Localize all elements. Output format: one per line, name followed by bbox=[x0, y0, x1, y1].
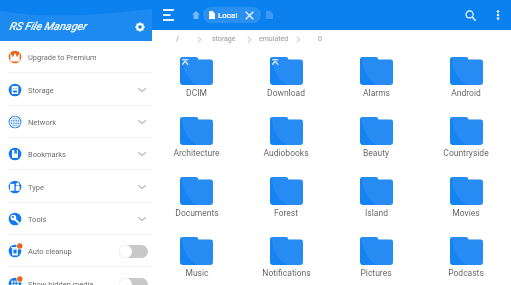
button[interactable]: Alarms bbox=[331, 48, 421, 108]
staticText: Local bbox=[218, 11, 238, 20]
staticText: Audiobooks bbox=[263, 148, 309, 158]
button[interactable]: Network bbox=[0, 106, 152, 138]
button[interactable]: Movies bbox=[421, 168, 511, 228]
staticText: Show hidden media bbox=[28, 280, 94, 285]
staticText: Movies bbox=[452, 208, 480, 218]
button[interactable]: Close tab bbox=[245, 11, 254, 20]
staticText: Podcasts bbox=[448, 268, 484, 278]
button[interactable]: Audiobooks bbox=[241, 108, 331, 168]
button[interactable]: Documents bbox=[152, 168, 241, 228]
staticText: RS File Manager bbox=[9, 20, 87, 33]
staticText: Bookmarks bbox=[28, 150, 66, 159]
button[interactable]: DCIM bbox=[152, 48, 241, 108]
staticText: Upgrade to Premium bbox=[28, 53, 97, 62]
staticText: Documents bbox=[175, 208, 219, 218]
staticText: Network bbox=[28, 118, 57, 127]
staticText: Notifications bbox=[262, 268, 311, 278]
button[interactable]: Notifications bbox=[241, 228, 331, 285]
button[interactable]: New tab bbox=[263, 9, 275, 21]
staticText: Countryside bbox=[443, 148, 489, 158]
button[interactable]: storage bbox=[212, 35, 236, 43]
button[interactable]: Download bbox=[241, 48, 331, 108]
staticText: Music bbox=[185, 268, 209, 278]
staticText: Alarms bbox=[363, 88, 390, 98]
staticText: Forest bbox=[274, 208, 298, 218]
button[interactable]: Countryside bbox=[421, 108, 511, 168]
button[interactable]: / bbox=[176, 35, 179, 43]
staticText: Type bbox=[28, 183, 44, 192]
button[interactable]: Type bbox=[0, 171, 152, 203]
button[interactable]: Beauty bbox=[331, 108, 421, 168]
button[interactable]: Forest bbox=[241, 168, 331, 228]
button[interactable]: Music bbox=[152, 228, 241, 285]
staticText: Island bbox=[365, 208, 388, 218]
button[interactable]: Auto cleanup bbox=[0, 235, 152, 267]
button[interactable]: Architecture bbox=[152, 108, 241, 168]
staticText: / bbox=[176, 35, 179, 43]
button[interactable]: Menu bbox=[157, 4, 179, 26]
button[interactable]: Local bbox=[203, 7, 261, 23]
staticText: Architecture bbox=[173, 148, 220, 158]
staticText: Android bbox=[451, 88, 481, 98]
staticText: Download bbox=[267, 88, 305, 98]
button[interactable]: Android bbox=[421, 48, 511, 108]
button[interactable]: Storage bbox=[0, 74, 152, 106]
button[interactable]: emulated bbox=[259, 35, 289, 43]
button[interactable]: Island bbox=[331, 168, 421, 228]
button[interactable]: Upgrade to Premium bbox=[0, 41, 152, 73]
button[interactable]: Tools bbox=[0, 203, 152, 235]
button[interactable]: 0 bbox=[318, 35, 322, 43]
staticText: storage bbox=[212, 35, 236, 43]
button[interactable]: Show hidden media bbox=[0, 268, 152, 285]
staticText: Storage bbox=[28, 86, 54, 95]
button[interactable]: Home bbox=[190, 9, 202, 21]
staticText: 0 bbox=[318, 35, 322, 43]
staticText: Auto cleanup bbox=[28, 247, 72, 256]
button[interactable]: Search bbox=[460, 5, 480, 25]
staticText: emulated bbox=[259, 35, 289, 43]
button[interactable]: Settings bbox=[130, 17, 149, 36]
button[interactable]: Bookmarks bbox=[0, 138, 152, 170]
button[interactable]: More options bbox=[491, 8, 505, 22]
button[interactable]: Podcasts bbox=[421, 228, 511, 285]
staticText: DCIM bbox=[186, 88, 207, 98]
staticText: Tools bbox=[28, 215, 47, 224]
staticText: Pictures bbox=[360, 268, 392, 278]
staticText: Beauty bbox=[363, 148, 389, 158]
button[interactable]: Pictures bbox=[331, 228, 421, 285]
